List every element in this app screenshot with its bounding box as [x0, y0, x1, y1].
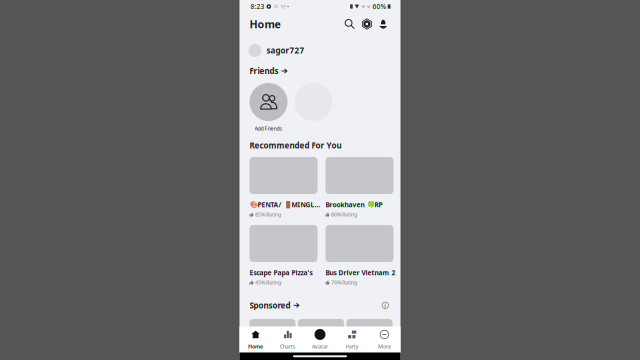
staticText: Friends [249, 66, 278, 76]
staticText: Add Friends [254, 125, 282, 132]
staticText: Sponsored [249, 300, 290, 311]
staticText: Escape Papa Pizza's [249, 268, 312, 277]
button[interactable]: Sponsored [249, 298, 299, 313]
staticText: More [378, 343, 391, 350]
staticText: sagor727 [266, 45, 304, 56]
button[interactable]: Bus Driver Vietnam 2 [325, 225, 396, 286]
staticText: ✕ [273, 3, 279, 10]
button[interactable]: Notifications [376, 15, 400, 33]
button[interactable]: More [368, 326, 400, 352]
button[interactable]: About sponsored [379, 299, 391, 312]
staticText: Party [346, 343, 359, 350]
staticText: 85% Rating [255, 211, 281, 218]
button[interactable]: Robux balance [358, 14, 376, 34]
button[interactable]: Brookhaven 🍀RP [325, 157, 396, 218]
button[interactable]: Search [341, 15, 358, 33]
button[interactable]: Recommended For You [249, 138, 341, 153]
button[interactable]: sagor727 [239, 35, 400, 64]
button[interactable]: Party [336, 326, 368, 352]
staticText: Recommended For You [249, 140, 341, 151]
staticText: 45% Rating [255, 279, 281, 286]
staticText: 🎨PENTA/ 🚪MINGL… [249, 200, 320, 209]
button[interactable]: 🎨PENTA/ 🚪MINGL… [249, 157, 320, 218]
button[interactable]: Friends [249, 64, 287, 78]
staticText: Brookhaven 🍀RP [325, 200, 382, 209]
staticText: 86% Rating [331, 211, 357, 218]
button[interactable]: Home [239, 326, 272, 352]
button[interactable]: Escape Papa Pizza's [249, 225, 320, 286]
staticText: i [384, 302, 386, 309]
button[interactable]: Add Friends [249, 83, 287, 132]
staticText: Bus Driver Vietnam 2 [325, 268, 395, 277]
staticText: Home [248, 343, 263, 350]
button[interactable]: Charts [272, 326, 304, 352]
staticText: 76% Rating [331, 279, 357, 286]
staticText: Avatar [312, 343, 328, 350]
button[interactable]: Avatar [304, 326, 336, 352]
staticText: Home [249, 17, 280, 31]
staticText: Charts [280, 343, 296, 350]
staticText: 60% [372, 2, 386, 11]
staticText: 8:23 [250, 2, 264, 11]
